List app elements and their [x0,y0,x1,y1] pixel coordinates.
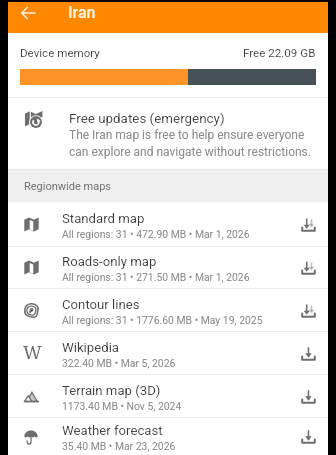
staticText: Free 22.09 GB [243,46,316,60]
staticText: All regions: 31 • 472.90 MB • Mar 1, 202… [62,228,250,240]
staticText: 1173.40 MB • Nov 5, 2024 [62,400,182,412]
staticText: Weather forecast [62,423,163,438]
button[interactable]: Download Standard map [288,202,328,246]
staticText: All regions: 31 • 271.50 MB • Mar 1, 202… [62,271,250,283]
button[interactable]: Download Terrain map (3D) [288,375,328,417]
staticText: All regions: 31 • 1776.60 MB • May 19, 2… [62,314,263,326]
staticText: 35.40 MB • Mar 23, 2026 [62,440,176,452]
staticText: 322.40 MB • Mar 5, 2026 [62,357,176,369]
staticText: Device memory [20,46,100,60]
staticText: Terrain map (3D) [62,383,161,398]
staticText: Roads-only map [62,254,157,269]
staticText: The Iran map is free to help ensure ever… [69,128,319,159]
staticText: Free updates (emergency) [69,111,225,127]
staticText: Regionwide maps [24,180,112,193]
staticText: Iran [68,3,96,22]
button[interactable]: Terrain map (3D) [8,375,328,417]
button[interactable]: W [8,332,328,374]
button[interactable]: Back [14,2,42,24]
button[interactable]: Weather forecast [8,418,328,455]
staticText: W [23,340,42,365]
staticText: Wikipedia [62,340,120,355]
button[interactable]: Download Weather forecast [288,418,328,455]
button[interactable]: Roads-only map [8,247,328,288]
button[interactable]: Download Contour lines [288,289,328,331]
button[interactable]: Free updates (emergency) [8,98,328,169]
button[interactable]: Standard map [8,202,328,246]
button[interactable]: Contour lines [8,289,328,331]
button[interactable]: Download Roads-only map [288,247,328,288]
staticText: Standard map [62,211,145,226]
button[interactable]: Download Wikipedia [288,332,328,374]
staticText: Contour lines [62,297,140,312]
